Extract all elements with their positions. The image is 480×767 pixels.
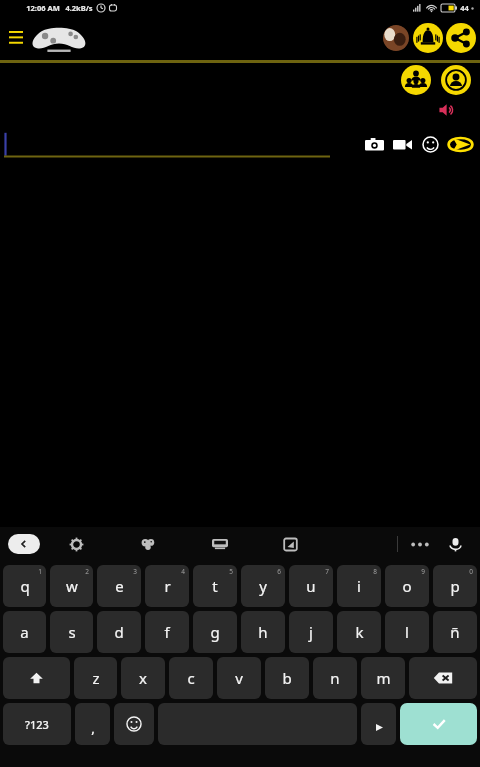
button[interactable]	[361, 703, 396, 745]
button[interactable]: ?123	[3, 703, 71, 745]
button[interactable]: Backspace	[409, 657, 477, 699]
staticText: s	[68, 622, 76, 642]
staticText: u	[306, 576, 316, 596]
staticText: 7	[325, 567, 329, 576]
button[interactable]: Sound	[436, 99, 458, 121]
staticText: 3	[133, 567, 137, 576]
staticText: t	[212, 576, 218, 596]
staticText: g	[210, 622, 220, 642]
staticText: h	[258, 622, 268, 642]
button[interactable]: d	[97, 611, 141, 653]
button[interactable]: g	[193, 611, 237, 653]
staticText: ?123	[25, 717, 49, 732]
staticText: l	[405, 622, 409, 642]
staticText: i	[357, 576, 361, 596]
button[interactable]: Notifications	[413, 23, 443, 53]
button[interactable]: t	[193, 565, 237, 607]
button[interactable]: Expand	[8, 534, 40, 554]
button[interactable]: n	[313, 657, 357, 699]
staticText: j	[309, 622, 313, 642]
staticText: 12:06 AM	[26, 3, 60, 13]
button[interactable]: Voice input	[442, 531, 468, 557]
button[interactable]: k	[337, 611, 381, 653]
button[interactable]: y	[241, 565, 285, 607]
button[interactable]: Send	[445, 129, 475, 159]
button[interactable]: z	[74, 657, 117, 699]
button[interactable]: Group	[401, 65, 431, 95]
button[interactable]: Shift	[3, 657, 70, 699]
button[interactable]: u	[289, 565, 333, 607]
button[interactable]: Share	[446, 23, 476, 53]
staticText: 9	[421, 567, 425, 576]
button[interactable]: q	[3, 565, 46, 607]
staticText: 4	[181, 567, 185, 576]
staticText: n	[330, 668, 340, 688]
button[interactable]: More options	[398, 530, 442, 558]
staticText: 0	[469, 567, 473, 576]
button[interactable]: b	[265, 657, 309, 699]
button[interactable]: x	[121, 657, 165, 699]
staticText: y	[259, 576, 267, 596]
staticText: c	[187, 668, 195, 688]
button[interactable]: Stickers	[112, 530, 184, 558]
staticText: v	[235, 668, 243, 688]
button[interactable]: Profile photo	[383, 25, 409, 51]
staticText: x	[139, 668, 147, 688]
button[interactable]: f	[145, 611, 189, 653]
button[interactable]: GIF	[184, 530, 255, 558]
button[interactable]: a	[3, 611, 46, 653]
staticText: ñ	[450, 622, 460, 642]
button[interactable]: h	[241, 611, 285, 653]
button[interactable]: s	[50, 611, 93, 653]
staticText: d	[114, 622, 124, 642]
button[interactable]: Translate	[255, 530, 326, 558]
staticText: w	[66, 576, 78, 596]
staticText: f	[164, 622, 170, 642]
button[interactable]	[30, 21, 88, 55]
button[interactable]: i	[337, 565, 381, 607]
button[interactable]: p	[433, 565, 477, 607]
button[interactable]: r	[145, 565, 189, 607]
staticText: b	[282, 668, 292, 688]
staticText: 8	[373, 567, 377, 576]
button[interactable]: Account	[441, 65, 471, 95]
button[interactable]: l	[385, 611, 429, 653]
button[interactable]: c	[169, 657, 213, 699]
staticText: 6	[277, 567, 281, 576]
staticText: 4.2kB/s	[65, 3, 93, 13]
button[interactable]: o	[385, 565, 429, 607]
staticText: 5	[229, 567, 233, 576]
button[interactable]: Video	[389, 131, 415, 157]
button[interactable]	[4, 130, 330, 158]
button[interactable]: m	[361, 657, 405, 699]
button[interactable]: ñ	[433, 611, 477, 653]
button[interactable]: Emoji	[417, 131, 443, 157]
button[interactable]: Emoji	[114, 703, 154, 745]
staticText: 1	[38, 567, 42, 576]
button[interactable]: Camera	[361, 131, 387, 157]
staticText: o	[402, 576, 412, 596]
button[interactable]: Settings	[40, 530, 112, 558]
staticText: r	[164, 576, 171, 596]
button[interactable]: w	[50, 565, 93, 607]
staticText: p	[450, 576, 460, 596]
button[interactable]: e	[97, 565, 141, 607]
staticText: 44	[460, 3, 469, 13]
staticText: ,	[91, 719, 95, 737]
staticText: m	[376, 668, 391, 688]
staticText: a	[20, 622, 29, 642]
staticText: e	[115, 576, 124, 596]
button[interactable]: Menu	[4, 26, 28, 50]
button[interactable]: Enter	[400, 703, 477, 745]
staticText: z	[92, 668, 100, 688]
staticText: k	[355, 622, 364, 642]
staticText: q	[20, 576, 30, 596]
button[interactable]: j	[289, 611, 333, 653]
staticText: 2	[85, 567, 89, 576]
button[interactable]: ,	[75, 703, 110, 745]
button[interactable]: v	[217, 657, 261, 699]
